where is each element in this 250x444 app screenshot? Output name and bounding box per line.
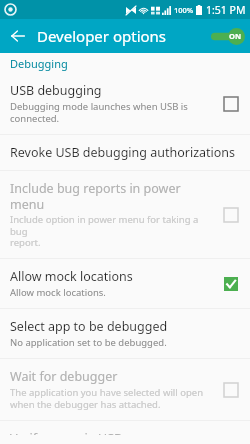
button[interactable]: Wait for debugger [0,359,250,420]
button[interactable]: Developer options on [205,24,245,48]
staticText: Developer options [37,26,167,46]
button[interactable]: Select app to be debugged [0,309,250,358]
staticText: Allow mock locations. [10,286,106,299]
staticText: Include option in power menu for taking … [10,213,212,249]
staticText: ON [229,31,242,41]
button[interactable]: Allow mock locations [0,259,250,308]
button[interactable]: Navigate up [5,23,31,49]
staticText: Debugging [10,56,68,71]
staticText: Wait for debugger [10,368,118,385]
button[interactable]: Include bug reports in power menu [0,171,250,258]
staticText: The application you have selected will o… [10,386,204,411]
staticText: Debugging mode launches when USB is conn… [10,100,188,125]
button[interactable]: Unchecked [220,379,242,401]
button[interactable]: Verify apps via USB [0,421,250,444]
button[interactable]: Checked [220,273,242,295]
staticText: Allow mock locations [10,268,133,285]
staticText: 1:51 PM [206,3,246,17]
staticText: Select app to be debugged [10,318,168,335]
staticText: USB debugging [10,82,102,99]
staticText: 100% [174,5,194,15]
button[interactable]: Unchecked [220,93,242,115]
button[interactable]: Revoke USB debugging authorizations [0,135,250,170]
staticText: Verify apps via USB [10,430,123,435]
staticText: Revoke USB debugging authorizations [10,144,236,161]
staticText: Include bug reports in power menu [10,180,212,212]
button[interactable]: Unchecked [220,204,242,226]
staticText: No application set to be debugged. [10,336,167,349]
button[interactable]: USB debugging [0,73,250,134]
